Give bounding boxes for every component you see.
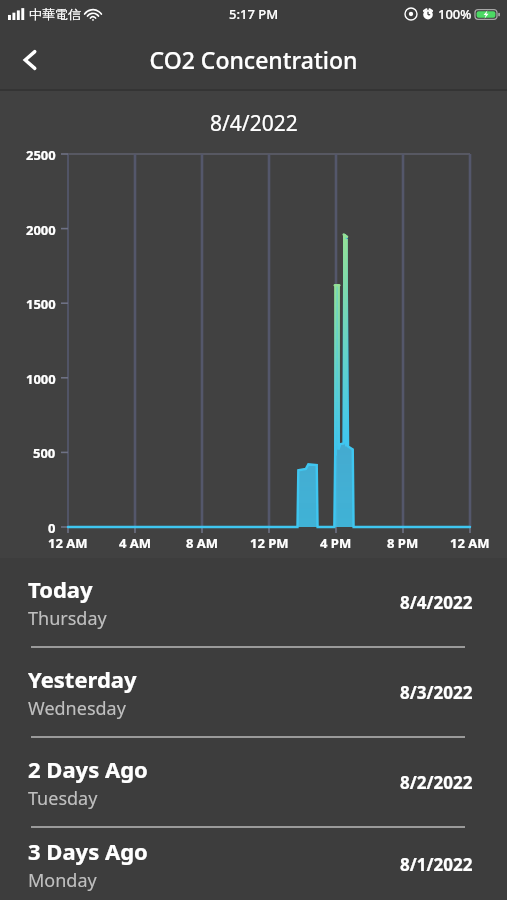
staticText: 8 AM (186, 534, 219, 552)
staticText: 5:17 PM (229, 5, 279, 23)
staticText: 100% (438, 5, 472, 23)
staticText: 1500 (26, 295, 56, 313)
staticText: Monday (28, 868, 97, 893)
staticText: 8 PM (387, 534, 419, 552)
staticText: 2000 (26, 221, 56, 239)
staticText: 2500 (26, 146, 56, 164)
staticText: 2 Days Ago (28, 754, 148, 784)
button[interactable]: Yesterday (0, 648, 507, 736)
staticText: Thursday (28, 606, 107, 631)
staticText: Tuesday (28, 786, 98, 811)
staticText: 8/4/2022 (400, 591, 473, 614)
staticText: 8/3/2022 (400, 681, 473, 704)
staticText: Today (28, 574, 93, 604)
staticText: 500 (33, 444, 56, 462)
staticText: 12 AM (450, 534, 490, 552)
staticText: 12 AM (48, 534, 88, 552)
staticText: Wednesday (28, 696, 126, 721)
button[interactable]: 2 Days Ago (0, 738, 507, 826)
staticText: 12 PM (250, 534, 289, 552)
staticText: 4 PM (320, 534, 352, 552)
button[interactable]: Back (6, 36, 54, 84)
staticText: 8/4/2022 (210, 109, 298, 138)
staticText: 8/2/2022 (400, 771, 473, 794)
staticText: Yesterday (28, 664, 137, 694)
staticText: 0 (48, 519, 56, 537)
button[interactable]: Today (0, 558, 507, 646)
staticText: 中華電信 (29, 6, 81, 22)
staticText: 8/1/2022 (400, 853, 473, 876)
staticText: 4 AM (119, 534, 152, 552)
staticText: CO2 Concentration (149, 44, 358, 75)
staticText: 1000 (26, 370, 56, 388)
staticText: 3 Days Ago (28, 836, 148, 866)
button[interactable]: 3 Days Ago (0, 828, 507, 900)
